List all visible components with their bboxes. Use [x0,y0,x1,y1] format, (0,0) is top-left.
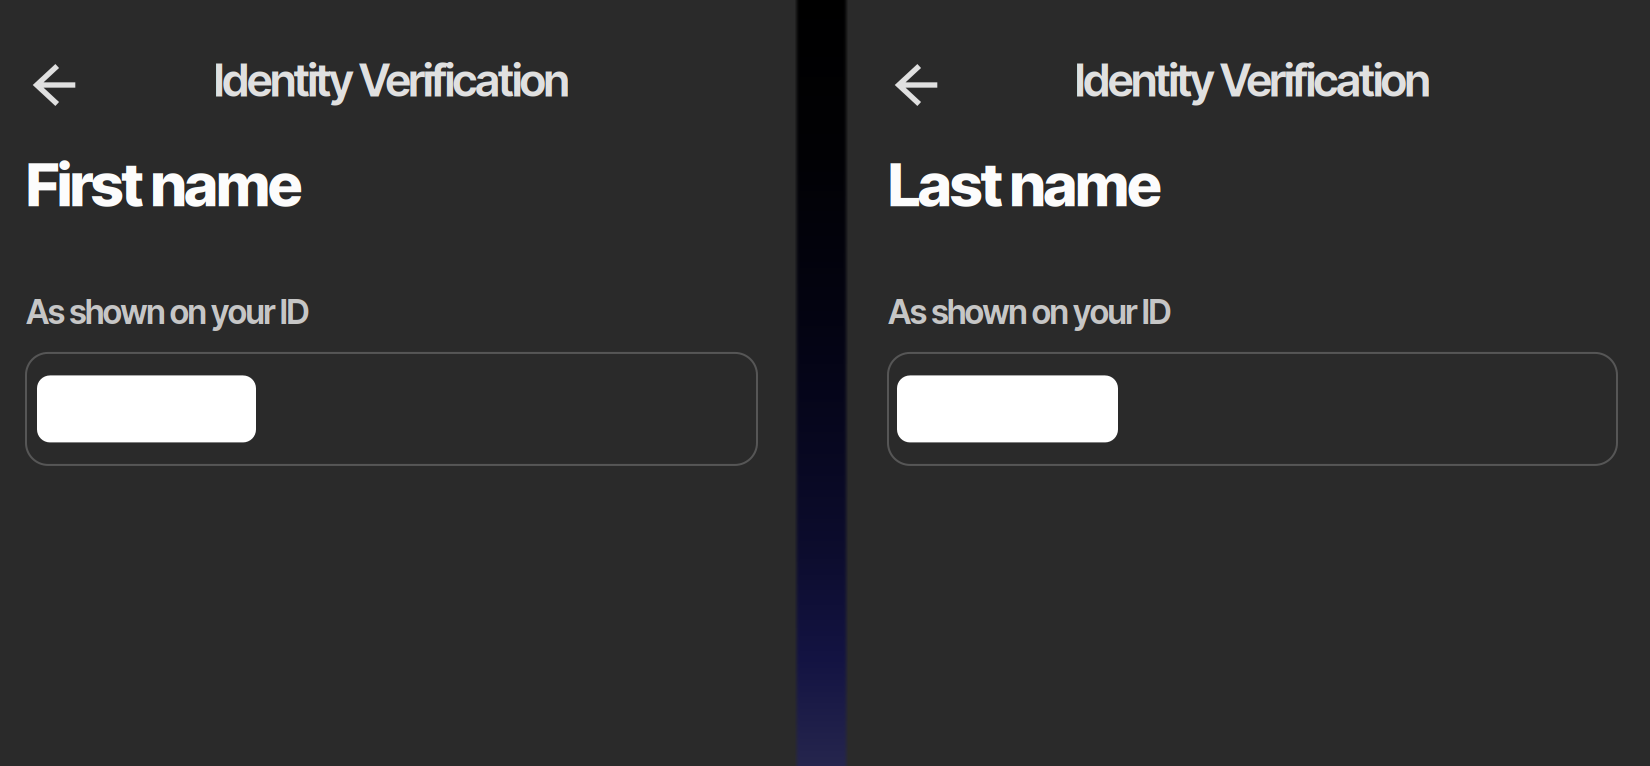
staticText: Last name [888,148,1161,221]
button[interactable] [26,353,757,465]
button[interactable] [888,353,1617,465]
button[interactable]: Back [26,58,757,102]
staticText: As shown on your ID [26,292,309,332]
staticText: Identity Verification [213,53,569,107]
staticText: Identity Verification [1074,53,1430,107]
button[interactable]: Back [888,58,1617,102]
staticText: As shown on your ID [888,292,1171,332]
staticText: First name [26,148,302,221]
